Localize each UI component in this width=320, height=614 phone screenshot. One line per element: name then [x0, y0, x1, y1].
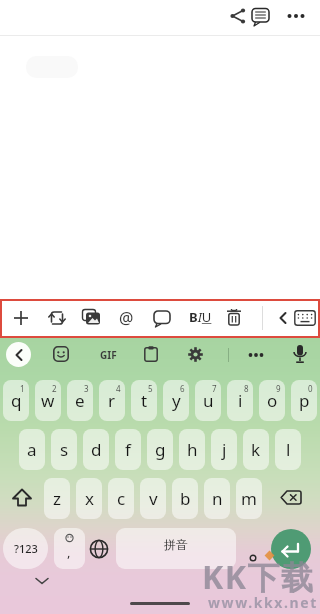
button[interactable]: ,	[54, 528, 85, 569]
button[interactable]: f	[115, 429, 141, 470]
button[interactable]: t	[131, 380, 157, 421]
staticText: x	[85, 487, 94, 510]
staticText: k	[251, 438, 261, 461]
staticText: g	[155, 438, 166, 461]
staticText: 0	[308, 383, 313, 394]
staticText: b	[180, 487, 191, 510]
button[interactable]: i	[227, 380, 253, 421]
staticText: 1	[20, 383, 25, 394]
staticText: 2	[52, 383, 57, 394]
staticText: n	[212, 487, 223, 510]
button[interactable]	[153, 309, 171, 327]
button[interactable]	[34, 576, 50, 586]
button[interactable]: g	[147, 429, 173, 470]
button[interactable]: n	[204, 478, 230, 519]
button[interactable]	[144, 346, 159, 363]
staticText: z	[53, 487, 61, 510]
button[interactable]: y	[163, 380, 189, 421]
button[interactable]	[48, 309, 66, 327]
staticText: u	[203, 389, 214, 412]
button[interactable]: x	[76, 478, 102, 519]
staticText: GIF	[100, 348, 117, 362]
button[interactable]: 拼音	[116, 528, 236, 569]
button[interactable]: s	[51, 429, 77, 470]
button[interactable]	[82, 309, 101, 326]
staticText: w	[41, 389, 55, 412]
button[interactable]: z	[44, 478, 70, 519]
button[interactable]: p	[291, 380, 317, 421]
staticText: 拼音	[164, 537, 188, 552]
button[interactable]: h	[179, 429, 205, 470]
staticText: q	[11, 389, 22, 412]
button[interactable]	[245, 347, 267, 363]
staticText: m	[241, 487, 257, 510]
staticText: p	[299, 389, 310, 412]
button[interactable]: a	[19, 429, 45, 470]
staticText: o	[267, 389, 278, 412]
button[interactable]	[14, 311, 28, 325]
staticText: r	[108, 389, 116, 412]
staticText: f	[125, 438, 131, 461]
staticText: 6	[180, 383, 185, 394]
button[interactable]	[244, 550, 262, 566]
staticText: l	[286, 438, 291, 461]
button[interactable]	[280, 490, 304, 507]
staticText: h	[187, 438, 198, 461]
staticText: v	[149, 487, 158, 510]
button[interactable]: k	[243, 429, 269, 470]
button[interactable]	[6, 342, 31, 367]
staticText: 7	[212, 383, 217, 394]
button[interactable]	[10, 488, 34, 510]
staticText: d	[91, 438, 102, 461]
staticText: KK下载	[202, 555, 315, 599]
staticText: e	[75, 389, 85, 412]
button[interactable]: b	[172, 478, 198, 519]
button[interactable]	[226, 308, 242, 326]
button[interactable]: v	[140, 478, 166, 519]
staticText: c	[117, 487, 126, 510]
staticText: y	[172, 389, 181, 412]
button[interactable]	[53, 346, 70, 363]
staticText: ?123	[14, 541, 38, 556]
staticText: BIU	[189, 308, 212, 326]
button[interactable]: c	[108, 478, 134, 519]
button[interactable]: BIU	[188, 308, 212, 326]
staticText: a	[27, 438, 37, 461]
button[interactable]	[89, 539, 109, 559]
button[interactable]	[250, 6, 272, 28]
button[interactable]: r	[99, 380, 125, 421]
button[interactable]: o	[259, 380, 285, 421]
button[interactable]: l	[275, 429, 301, 470]
staticText: 4	[116, 383, 121, 394]
staticText: j	[222, 438, 227, 461]
button[interactable]: w	[35, 380, 61, 421]
button[interactable]: d	[83, 429, 109, 470]
button[interactable]: m	[236, 478, 262, 519]
staticText: 8	[244, 383, 249, 394]
button[interactable]: ?123	[3, 528, 48, 569]
button[interactable]	[294, 310, 316, 326]
button[interactable]	[283, 7, 309, 25]
button[interactable]: @	[117, 307, 135, 327]
staticText: i	[238, 389, 243, 412]
staticText: www.kkx.net	[208, 593, 318, 612]
staticText: @	[119, 307, 134, 327]
staticText: s	[60, 438, 69, 461]
button[interactable]	[278, 311, 288, 325]
staticText: 3	[84, 383, 89, 394]
staticText: t	[141, 389, 148, 412]
button[interactable]	[271, 529, 311, 569]
staticText: ,	[67, 543, 71, 561]
staticText: 9	[276, 383, 281, 394]
button[interactable]: j	[211, 429, 237, 470]
button[interactable]: q	[3, 380, 29, 421]
staticText: 5	[148, 383, 153, 394]
button[interactable]: u	[195, 380, 221, 421]
button[interactable]: e	[67, 380, 93, 421]
button[interactable]: GIF	[96, 346, 120, 364]
button[interactable]	[229, 7, 247, 25]
button[interactable]	[187, 346, 204, 363]
button[interactable]	[292, 344, 308, 365]
